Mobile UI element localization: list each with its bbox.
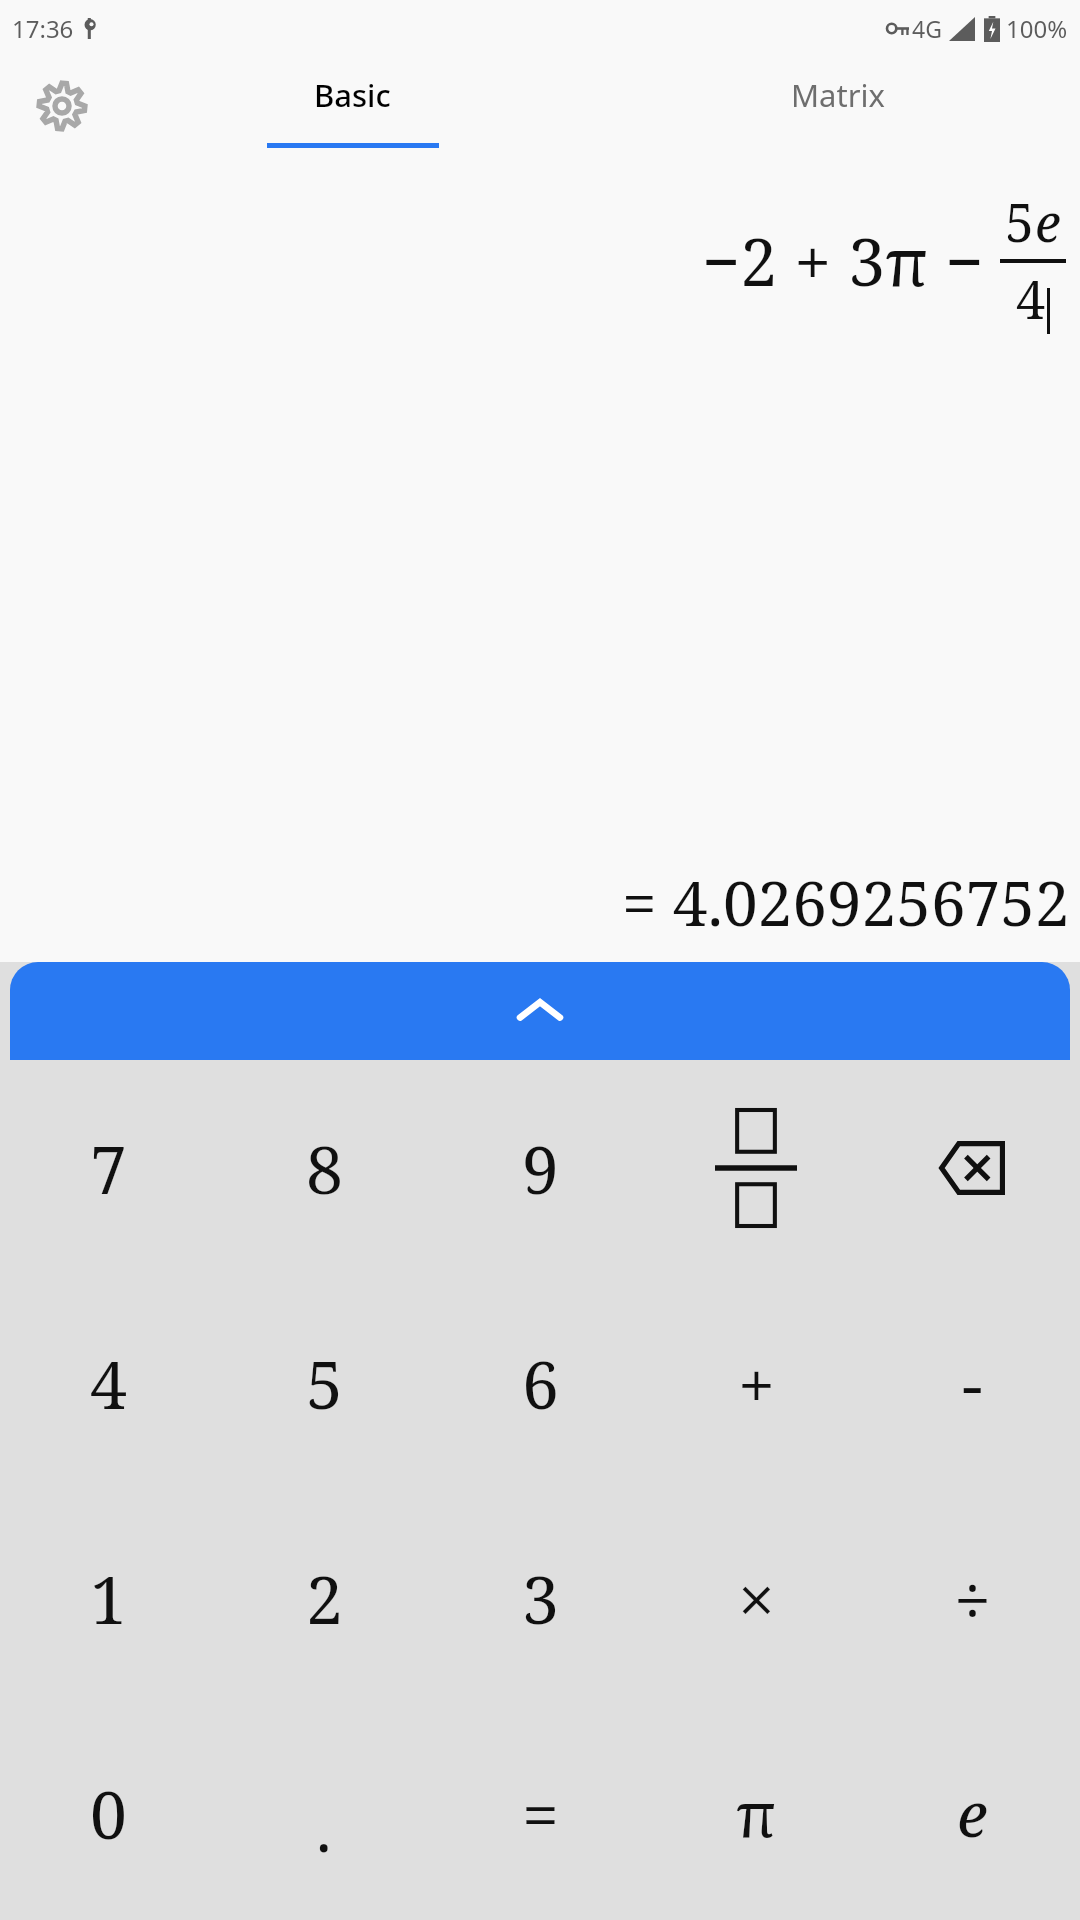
staticText: 3: [522, 1553, 559, 1643]
staticText: 6: [522, 1338, 559, 1428]
button[interactable]: Settings: [22, 66, 102, 146]
button[interactable]: e: [864, 1705, 1080, 1920]
staticText: 7: [90, 1123, 127, 1213]
staticText: 4: [1016, 263, 1046, 334]
staticText: ÷: [954, 1553, 991, 1643]
button[interactable]: Collapse keypad: [10, 962, 1070, 1060]
staticText: 0: [90, 1768, 127, 1858]
button[interactable]: 5: [216, 1275, 432, 1490]
staticText: 4: [90, 1338, 127, 1428]
staticText: 9: [522, 1123, 559, 1213]
button[interactable]: Basic: [110, 56, 595, 166]
button[interactable]: 6: [432, 1275, 648, 1490]
button[interactable]: 7: [0, 1060, 216, 1275]
button[interactable]: Backspace: [864, 1060, 1080, 1275]
button[interactable]: +: [648, 1275, 864, 1490]
staticText: 4G: [912, 13, 942, 44]
button[interactable]: =: [432, 1705, 648, 1920]
button[interactable]: 3: [432, 1490, 648, 1705]
staticText: 8: [306, 1123, 343, 1213]
button[interactable]: ×: [648, 1490, 864, 1705]
staticText: 1: [90, 1553, 127, 1643]
staticText: =: [522, 1768, 559, 1858]
staticText: 2: [306, 1553, 343, 1643]
staticText: .: [316, 1786, 332, 1870]
button[interactable]: π: [648, 1705, 864, 1920]
staticText: Basic: [314, 74, 391, 116]
button[interactable]: 0: [0, 1705, 216, 1920]
button[interactable]: 1: [0, 1490, 216, 1705]
button[interactable]: Matrix: [595, 56, 1080, 166]
button[interactable]: ÷: [864, 1490, 1080, 1705]
staticText: 100%: [1006, 12, 1068, 45]
staticText: 5: [306, 1338, 343, 1428]
button[interactable]: 8: [216, 1060, 432, 1275]
staticText: e: [1035, 186, 1061, 257]
button[interactable]: 4: [0, 1275, 216, 1490]
staticText: e: [957, 1771, 988, 1855]
staticText: ×: [738, 1553, 775, 1643]
staticText: = 4.0269256752: [622, 860, 1070, 944]
staticText: +: [738, 1338, 775, 1428]
button[interactable]: 9: [432, 1060, 648, 1275]
button[interactable]: .: [216, 1705, 432, 1920]
staticText: 5: [1005, 186, 1035, 257]
staticText: π: [736, 1771, 777, 1855]
staticText: 17:36: [12, 12, 74, 45]
staticText: -: [962, 1338, 983, 1428]
staticText: −2 + 3π −: [702, 215, 984, 305]
button[interactable]: Fraction: [648, 1060, 864, 1275]
button[interactable]: 2: [216, 1490, 432, 1705]
button[interactable]: -: [864, 1275, 1080, 1490]
staticText: Matrix: [791, 74, 885, 116]
